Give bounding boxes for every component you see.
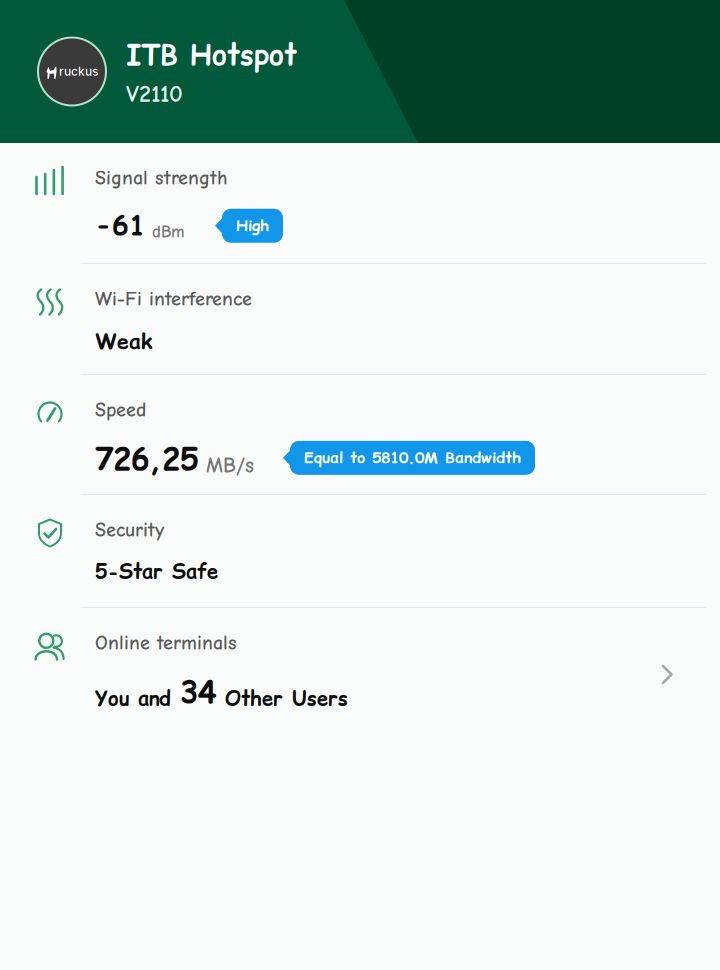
staticText: You and: [95, 685, 180, 713]
button[interactable]: Speed: [0, 375, 720, 494]
staticText: -61: [95, 206, 146, 244]
button[interactable]: Security: [0, 495, 720, 607]
staticText: ruckus: [59, 64, 98, 79]
staticText: Equal to 5810.0M Bandwidth: [304, 447, 521, 469]
staticText: MB/s: [198, 454, 254, 478]
staticText: Signal strength: [95, 166, 228, 189]
staticText: Other Users: [216, 685, 348, 713]
staticText: ITB Hotspot: [126, 35, 297, 74]
staticText: 726,25: [95, 438, 198, 480]
staticText: 34: [180, 671, 216, 713]
button[interactable]: Signal strength: [0, 143, 720, 263]
staticText: Security: [95, 518, 164, 541]
button[interactable]: Wi-Fi interference: [0, 264, 720, 374]
staticText: Online terminals: [95, 631, 237, 654]
staticText: V2110: [126, 80, 183, 108]
staticText: Speed: [95, 398, 146, 421]
button[interactable]: Online terminals: [0, 608, 720, 724]
staticText: 5-Star Safe: [95, 558, 218, 586]
staticText: High: [236, 215, 269, 237]
staticText: Wi-Fi interference: [95, 287, 252, 310]
staticText: dBm: [146, 222, 185, 242]
staticText: Weak: [95, 327, 152, 356]
